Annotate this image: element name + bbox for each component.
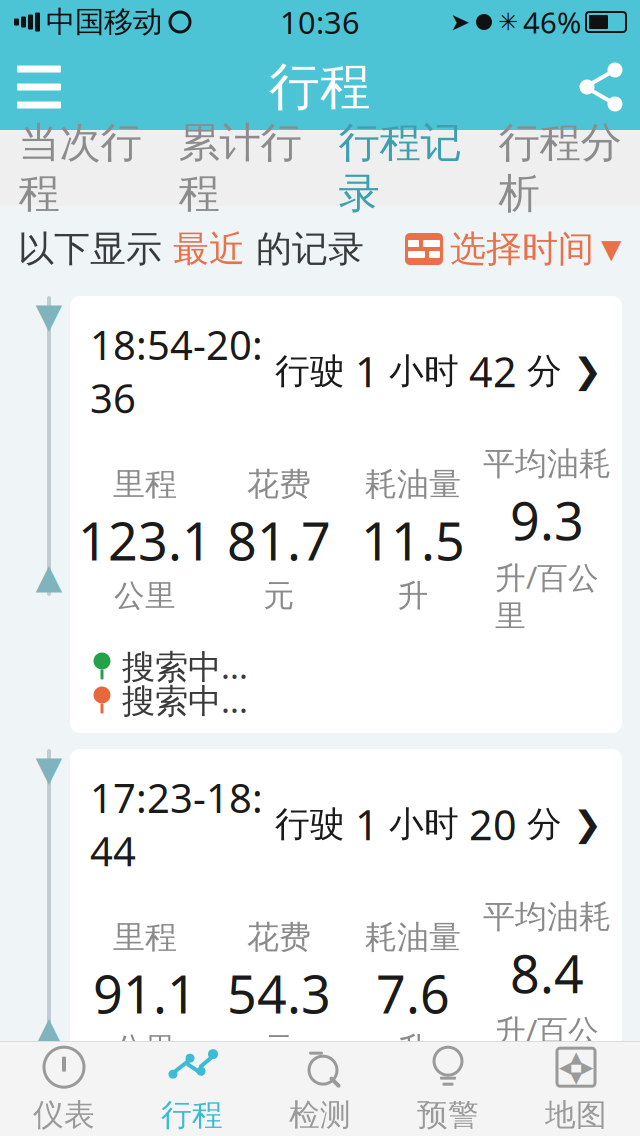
- staticText: 耗油量: [365, 465, 461, 504]
- staticText: 20: [469, 797, 517, 852]
- staticText: 最近: [162, 227, 256, 271]
- staticText: 花费: [247, 465, 311, 504]
- staticText: 91.1: [93, 959, 197, 1028]
- staticText: ▲: [35, 557, 62, 596]
- button[interactable]: 累计行程: [160, 130, 320, 206]
- button[interactable]: 行程记录: [320, 130, 480, 206]
- staticText: 1: [355, 344, 379, 399]
- staticText: 46%: [523, 2, 581, 41]
- staticText: 54.3: [227, 959, 331, 1028]
- staticText: ▲: [570, 1048, 582, 1066]
- staticText: 升: [397, 1030, 428, 1068]
- staticText: 花费: [247, 918, 311, 957]
- staticText: 搜索中...: [122, 1097, 248, 1136]
- staticText: 10:36: [280, 2, 360, 42]
- staticText: 123.1: [78, 506, 212, 575]
- staticText: 的记录: [256, 227, 364, 271]
- staticText: 81.7: [227, 506, 331, 575]
- staticText: 7.6: [376, 959, 450, 1028]
- staticText: 行驶: [275, 350, 355, 392]
- staticText: 选择时间: [450, 227, 594, 271]
- staticText: 当次行程: [18, 117, 141, 219]
- staticText: ◀: [559, 1058, 571, 1076]
- staticText: ▼: [35, 296, 62, 335]
- staticText: 行程记录: [338, 117, 461, 219]
- staticText: ▼: [35, 749, 62, 788]
- button[interactable]: 检测: [256, 1042, 384, 1136]
- staticText: 累计行程: [178, 117, 301, 219]
- staticText: 1: [355, 797, 379, 852]
- staticText: ▲: [35, 1010, 62, 1049]
- button[interactable]: 行程: [128, 1042, 256, 1136]
- staticText: 平均油耗: [483, 444, 611, 483]
- staticText: ✳: [498, 8, 518, 36]
- button[interactable]: 仪表: [0, 1042, 128, 1136]
- staticText: 42: [469, 344, 517, 399]
- staticText: 公里: [114, 1030, 176, 1068]
- button[interactable]: 当次行程: [0, 130, 160, 206]
- button[interactable]: 18:54-20:36: [70, 296, 622, 733]
- staticText: 公里: [114, 577, 176, 615]
- staticText: 中国移动: [46, 4, 162, 40]
- staticText: 11.5: [361, 506, 465, 575]
- staticText: 升/百公里: [495, 557, 599, 635]
- button[interactable]: 菜单: [0, 44, 78, 130]
- staticText: 耗油量: [365, 918, 461, 957]
- staticText: 预警: [417, 1096, 479, 1134]
- staticText: ▶: [581, 1058, 593, 1076]
- button[interactable]: 行程分析: [480, 130, 640, 206]
- staticText: ❯: [562, 351, 602, 391]
- staticText: ▼: [601, 234, 622, 264]
- staticText: 行驶: [275, 803, 355, 845]
- staticText: 18:54-20:36: [90, 318, 263, 424]
- staticText: 小时: [379, 803, 469, 845]
- button[interactable]: ▲: [512, 1042, 640, 1136]
- staticText: 分: [517, 350, 562, 392]
- button[interactable]: 17:23-18:44: [70, 749, 622, 1136]
- staticText: 搜索中...: [122, 678, 248, 722]
- staticText: 检测: [289, 1096, 351, 1134]
- staticText: 以下显示: [18, 227, 162, 271]
- staticText: 行程: [161, 1096, 223, 1134]
- staticText: 升: [397, 577, 428, 615]
- staticText: 8.4: [510, 938, 584, 1008]
- staticText: 升/百公里: [495, 1010, 599, 1088]
- staticText: 搜索中...: [122, 644, 248, 688]
- staticText: 里程: [113, 465, 177, 504]
- button[interactable]: 选择时间: [405, 227, 622, 271]
- staticText: ❯: [562, 804, 602, 844]
- staticText: 仪表: [33, 1096, 95, 1134]
- staticText: 元: [263, 577, 294, 615]
- staticText: ➤: [450, 8, 470, 36]
- button[interactable]: 分享: [562, 44, 640, 130]
- staticText: 行程分析: [498, 117, 621, 219]
- staticText: 里程: [113, 918, 177, 957]
- staticText: 地图: [545, 1096, 607, 1134]
- staticText: 17:23-18:44: [90, 771, 263, 877]
- staticText: 9.3: [510, 485, 584, 555]
- staticText: 元: [263, 1030, 294, 1068]
- staticText: 平均油耗: [483, 897, 611, 936]
- staticText: ▼: [570, 1068, 582, 1086]
- staticText: 分: [517, 803, 562, 845]
- button[interactable]: 预警: [384, 1042, 512, 1136]
- staticText: 行程: [269, 56, 371, 118]
- staticText: 小时: [379, 350, 469, 392]
